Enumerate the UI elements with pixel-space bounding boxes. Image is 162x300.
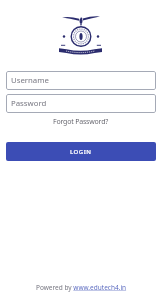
button[interactable]: Powered by www.edutech4.in [36, 283, 127, 292]
button[interactable]: Username [6, 71, 156, 90]
button[interactable]: Password [6, 94, 156, 113]
staticText: LOGIN [70, 148, 92, 156]
button[interactable]: LOGIN [6, 142, 156, 161]
staticText: Password [11, 98, 47, 109]
button[interactable]: Forgot Password? [53, 117, 109, 127]
staticText: Username [11, 75, 49, 86]
